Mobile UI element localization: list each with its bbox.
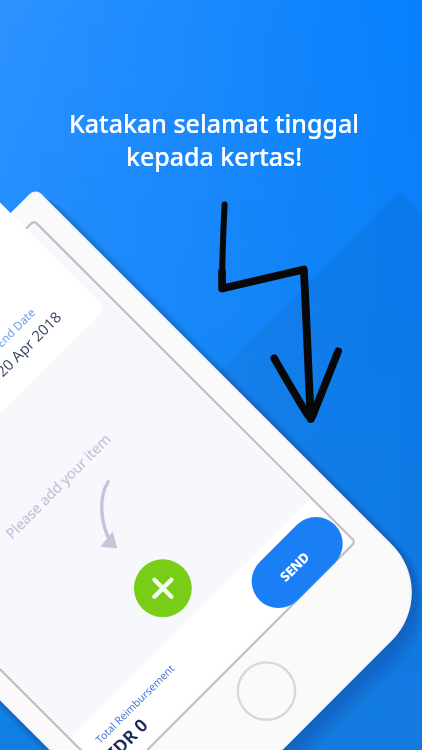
staticText: Katakan selamat tinggal kepada kertas! xyxy=(3,106,422,750)
